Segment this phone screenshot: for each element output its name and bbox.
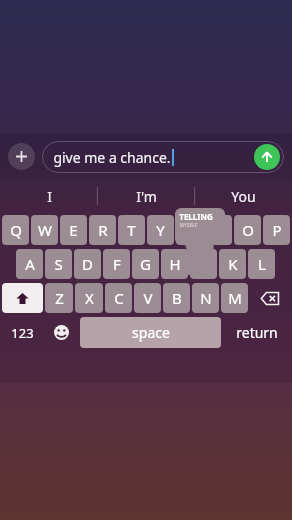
staticText: I'm [136, 187, 157, 206]
button[interactable]: C [105, 283, 132, 313]
staticText: P [272, 220, 282, 240]
button[interactable]: E [60, 215, 87, 245]
button[interactable]: L [248, 249, 275, 279]
button[interactable]: return [223, 317, 290, 348]
staticText: D [82, 254, 93, 274]
button[interactable]: J [190, 249, 217, 279]
button[interactable]: S [45, 249, 72, 279]
staticText: You [231, 187, 256, 206]
button[interactable]: Send [254, 144, 280, 170]
staticText: F [113, 254, 121, 274]
staticText: V [143, 288, 153, 308]
button[interactable]: O [234, 215, 261, 245]
button[interactable]: space [80, 317, 221, 348]
staticText: Y [156, 220, 165, 240]
button[interactable]: give me a chance. [42, 141, 284, 173]
staticText: T [127, 220, 136, 240]
staticText: X [85, 288, 94, 308]
staticText: N [200, 288, 212, 308]
staticText: L [258, 254, 266, 274]
button[interactable]: Add attachment [8, 143, 35, 170]
staticText: W [38, 220, 52, 240]
staticText: Z [55, 288, 64, 308]
staticText: MYSELF [179, 222, 198, 229]
staticText: space [132, 323, 170, 342]
button[interactable]: T [118, 215, 145, 245]
staticText: M [228, 288, 242, 308]
button[interactable]: M [221, 283, 248, 313]
staticText: C [114, 288, 124, 308]
staticText: E [69, 220, 78, 240]
staticText: A [25, 254, 35, 274]
button[interactable]: B [163, 283, 190, 313]
button[interactable]: Shift [2, 283, 43, 313]
staticText: K [228, 254, 238, 274]
button[interactable]: F [103, 249, 130, 279]
staticText: Q [10, 220, 22, 240]
button[interactable]: R [89, 215, 116, 245]
staticText: G [140, 254, 151, 274]
staticText: B [172, 288, 182, 308]
button[interactable]: Backspace [250, 283, 290, 313]
staticText: I [47, 187, 52, 206]
button[interactable]: U [176, 215, 203, 245]
button[interactable]: A [16, 249, 43, 279]
button[interactable]: 123 [2, 317, 42, 348]
button[interactable]: K [219, 249, 246, 279]
button[interactable]: H [161, 249, 188, 279]
staticText: S [54, 254, 63, 274]
staticText: U [184, 220, 195, 240]
staticText: O [242, 220, 254, 240]
button[interactable]: P [263, 215, 290, 245]
button[interactable]: N [192, 283, 219, 313]
staticText: R [98, 220, 108, 240]
button[interactable]: V [134, 283, 161, 313]
button[interactable]: G [132, 249, 159, 279]
button[interactable]: I'm [98, 180, 195, 212]
button[interactable]: Q [2, 215, 29, 245]
staticText: return [236, 323, 278, 342]
button[interactable]: D [74, 249, 101, 279]
button[interactable]: X [75, 283, 103, 313]
button[interactable]: Z [45, 283, 73, 313]
staticText: 123 [11, 324, 34, 342]
button[interactable]: Emoji [44, 317, 78, 348]
button[interactable]: You [195, 180, 292, 212]
staticText: TELLING [179, 211, 213, 222]
staticText: give me a chance. [53, 148, 171, 167]
button[interactable]: W [31, 215, 58, 245]
button[interactable]: Y [147, 215, 174, 245]
button[interactable]: I [205, 215, 232, 245]
button[interactable]: I [0, 180, 98, 212]
staticText: H [169, 254, 181, 274]
